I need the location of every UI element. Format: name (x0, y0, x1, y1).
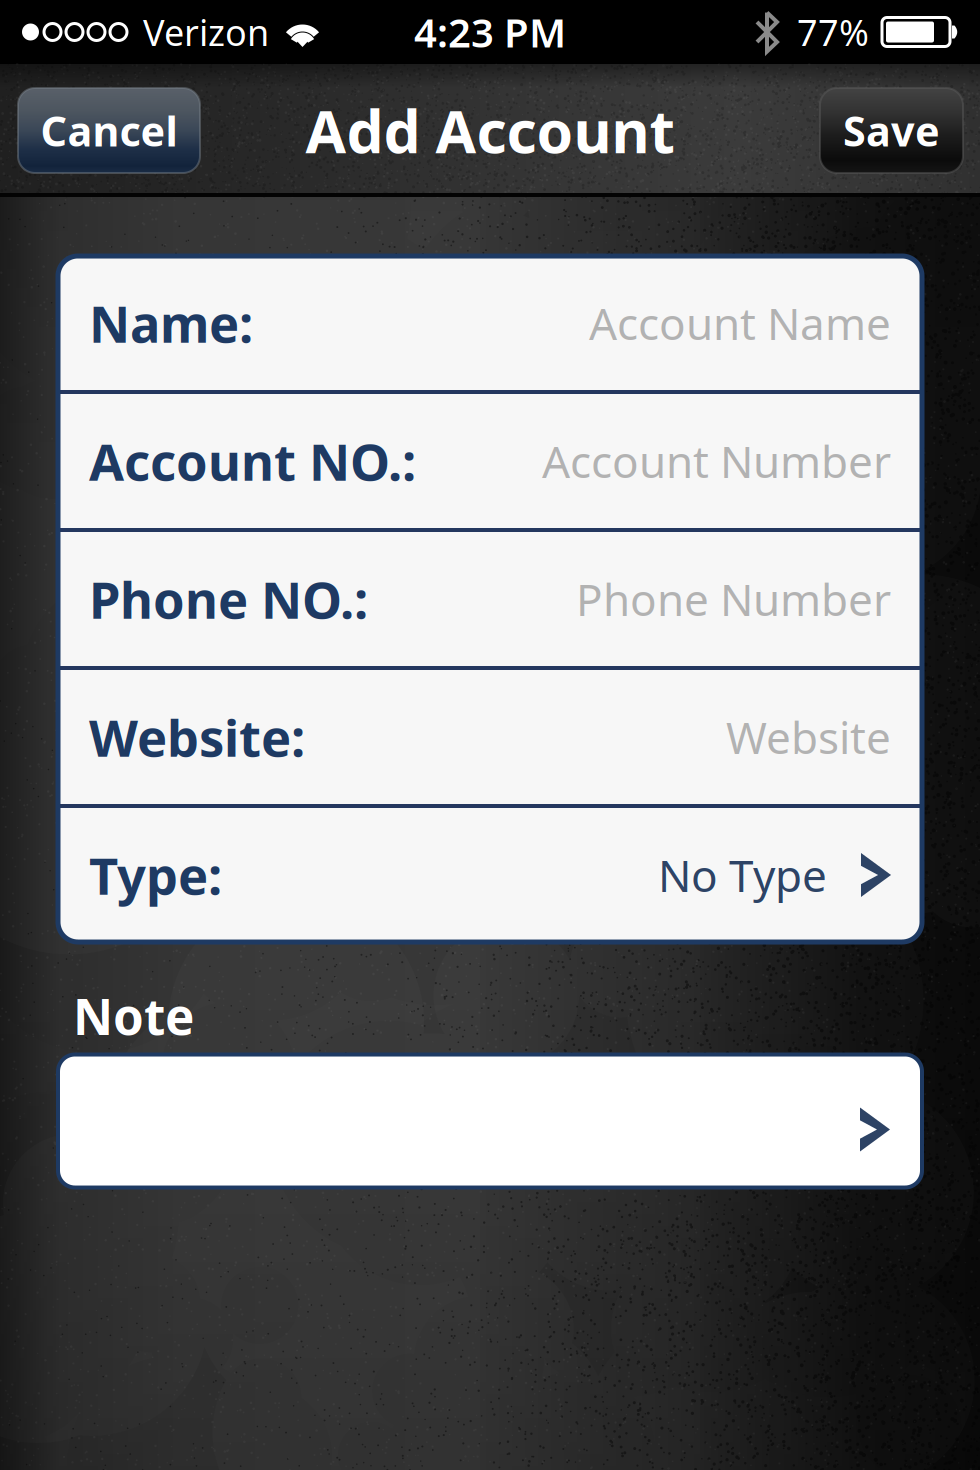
staticText: 77% (797, 8, 869, 56)
button[interactable]: Name: (58, 256, 922, 390)
staticText: No Type (658, 846, 827, 904)
button[interactable]: Save (820, 88, 963, 173)
button[interactable]: Website: (58, 670, 922, 804)
staticText: Add Account (305, 91, 674, 169)
button[interactable] (58, 1054, 922, 1187)
staticText: Save (843, 103, 940, 158)
staticText: Note (73, 983, 194, 1048)
staticText: Verizon (143, 8, 269, 56)
staticText: Account Number (542, 432, 891, 490)
staticText: Cancel (40, 103, 177, 158)
staticText: Phone Number (576, 570, 891, 628)
staticText: Account Name (589, 294, 891, 352)
staticText: 4:23 PM (414, 5, 566, 58)
staticText: Phone NO.: (89, 565, 368, 633)
staticText: Type: (89, 841, 222, 909)
staticText: Name: (89, 289, 253, 357)
staticText: Account NO.: (89, 427, 416, 495)
button[interactable]: Cancel (18, 88, 200, 173)
staticText: Website (726, 708, 891, 766)
button[interactable]: Account NO.: (58, 394, 922, 528)
staticText: Website: (89, 703, 305, 771)
button[interactable]: Phone NO.: (58, 532, 922, 666)
button[interactable]: Type: (58, 808, 922, 942)
